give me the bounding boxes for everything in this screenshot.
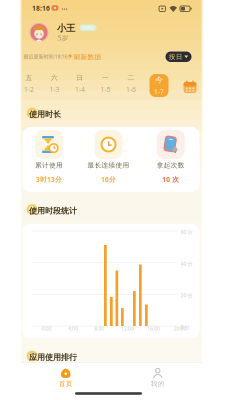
button[interactable]: 选择日期 (183, 80, 196, 93)
staticText: 已绑定 (82, 25, 94, 30)
button[interactable]: 按日 (165, 51, 191, 62)
staticText: 刷新数据 (73, 53, 101, 61)
staticText: 使用时段统计 (29, 206, 77, 216)
button[interactable]: 二 (121, 72, 141, 95)
staticText: 1-3 (49, 85, 59, 94)
staticText: 1-6 (126, 85, 136, 94)
staticText: 日 (76, 74, 83, 82)
button[interactable]: 一 (95, 72, 115, 95)
button[interactable]: 首页 (49, 367, 83, 389)
staticText: 3时13分 (36, 175, 62, 184)
staticText: 1-5 (100, 85, 110, 94)
staticText: 18:16 (32, 4, 50, 13)
staticText: 二 (127, 74, 134, 82)
staticText: 按日 (169, 53, 183, 61)
staticText: 今 (155, 75, 163, 85)
staticText: ··· (61, 5, 67, 13)
button[interactable]: 我的 (141, 367, 175, 389)
button[interactable]: 个人资料 (30, 23, 48, 41)
button[interactable]: 今 (149, 74, 168, 97)
staticText: 20 分 (180, 292, 192, 299)
staticText: 1-4 (75, 85, 85, 94)
staticText: 10 次 (162, 175, 179, 184)
button[interactable]: 五 (19, 72, 39, 95)
staticText: 20:00 (173, 325, 186, 332)
staticText: 5岁 (57, 33, 68, 42)
staticText: 1-7 (154, 87, 164, 96)
staticText: 我的 (151, 380, 165, 388)
staticText: 累计使用 (35, 161, 63, 169)
staticText: 五 (25, 74, 32, 82)
staticText: 16分 (101, 175, 116, 184)
staticText: 60 分 (180, 228, 192, 235)
staticText: 40 分 (180, 260, 192, 267)
staticText: 1-2 (24, 85, 34, 94)
staticText: 一 (102, 74, 109, 82)
button[interactable]: 刷新数据 (73, 53, 101, 61)
staticText: 0 分 (180, 323, 189, 330)
staticText: 拿起次数 (157, 161, 185, 169)
staticText: 六 (51, 74, 58, 82)
staticText: 首页 (59, 380, 73, 388)
staticText: 最近更新时间 18:16 (23, 53, 67, 60)
button[interactable]: 六 (44, 72, 64, 95)
button[interactable]: 日 (70, 72, 90, 95)
staticText: 最长连续使用 (87, 161, 129, 169)
staticText: 8:00 (94, 325, 104, 332)
staticText: 16:00 (147, 325, 160, 332)
staticText: 12:00 (121, 325, 134, 332)
staticText: 4:00 (68, 325, 78, 332)
staticText: 应用使用排行 (29, 352, 77, 362)
staticText: 使用时长 (29, 109, 61, 119)
staticText: 小王 (57, 22, 75, 34)
staticText: 0:00 (41, 325, 51, 332)
